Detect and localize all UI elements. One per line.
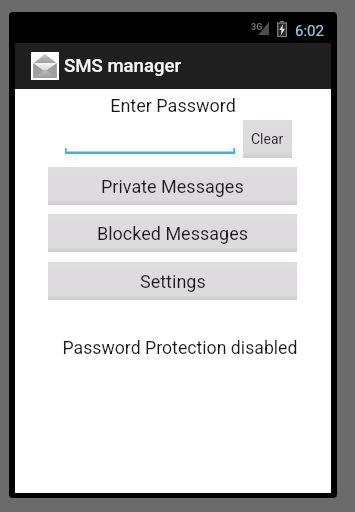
staticText: Password Protection disabled <box>22 338 337 359</box>
staticText: 6:02 <box>295 22 324 40</box>
button[interactable]: SMS manager <box>15 43 194 89</box>
staticText: Clear <box>251 131 284 147</box>
button[interactable]: Blocked Messages <box>48 214 297 252</box>
button[interactable]: Clear <box>243 120 292 158</box>
button[interactable]: Private Messages <box>48 167 297 205</box>
button[interactable]: Password field <box>65 122 235 154</box>
button[interactable]: Settings <box>48 262 297 300</box>
staticText: Enter Password <box>15 95 331 116</box>
staticText: Private Messages <box>101 176 244 197</box>
staticText: SMS manager <box>64 55 182 77</box>
staticText: 3G <box>251 22 263 33</box>
staticText: Settings <box>140 271 206 292</box>
staticText: Blocked Messages <box>97 223 248 244</box>
